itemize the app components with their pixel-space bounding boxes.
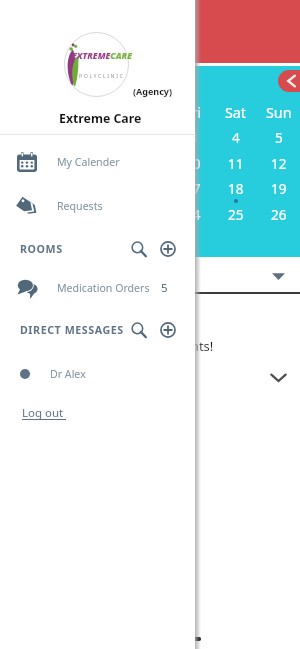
staticText: 8 xyxy=(103,155,111,171)
staticText: 10 xyxy=(185,155,201,171)
staticText: No appointments! xyxy=(103,337,214,355)
staticText: Extreme Care xyxy=(59,110,142,127)
staticText: Wed xyxy=(92,103,122,119)
staticText: 22 xyxy=(99,206,115,222)
button[interactable]: Dr Alex xyxy=(0,360,195,388)
staticText: 4 xyxy=(232,129,240,145)
staticText: 20 xyxy=(13,206,29,222)
staticText: EXTREMECARE xyxy=(72,50,137,62)
staticText: 3 xyxy=(189,129,197,145)
staticText: My Calender xyxy=(57,155,120,169)
button[interactable]: Log out xyxy=(18,402,74,424)
staticText: Medication Orders xyxy=(57,281,150,295)
staticText: Tue xyxy=(51,103,76,119)
staticText: 5 xyxy=(275,129,283,145)
staticText: 5 xyxy=(161,280,168,296)
button[interactable]: Back xyxy=(278,70,300,92)
staticText: Requests xyxy=(57,199,103,213)
button[interactable]: Add xyxy=(157,238,179,260)
staticText: Sat xyxy=(225,103,247,119)
staticText: 21 xyxy=(56,206,72,222)
staticText: Fri xyxy=(184,103,202,119)
staticText: DIRECT MESSAGES xyxy=(20,323,124,338)
staticText: 17 xyxy=(185,180,201,196)
staticText: Dr Alex xyxy=(50,367,86,381)
staticText: 18 xyxy=(228,180,244,196)
staticText: ROOMS xyxy=(20,242,63,257)
staticText: Thu xyxy=(137,103,163,119)
staticText: 7 xyxy=(60,155,68,171)
staticText: 12 xyxy=(271,155,287,171)
button[interactable]: Add xyxy=(157,319,179,341)
staticText: 19 xyxy=(271,180,287,196)
staticText: 24 xyxy=(185,206,201,222)
staticText: POLYCLINIC xyxy=(79,72,139,79)
staticText: 11 xyxy=(228,155,244,171)
button[interactable]: My Calender xyxy=(0,148,195,176)
staticText: Log out xyxy=(22,405,64,421)
button[interactable]: Requests xyxy=(0,192,195,220)
staticText: 26 xyxy=(271,206,287,222)
staticText: 6 xyxy=(17,155,25,171)
staticText: 25 xyxy=(228,206,244,222)
button[interactable]: Collapse calendar xyxy=(265,262,291,288)
button[interactable]: Search xyxy=(128,319,150,341)
button[interactable]: Search xyxy=(128,238,150,260)
button[interactable]: Medication Orders xyxy=(0,274,195,302)
button[interactable]: Expand appointments xyxy=(264,363,292,391)
staticText: (Agency) xyxy=(133,85,173,97)
staticText: Sun xyxy=(266,103,292,119)
